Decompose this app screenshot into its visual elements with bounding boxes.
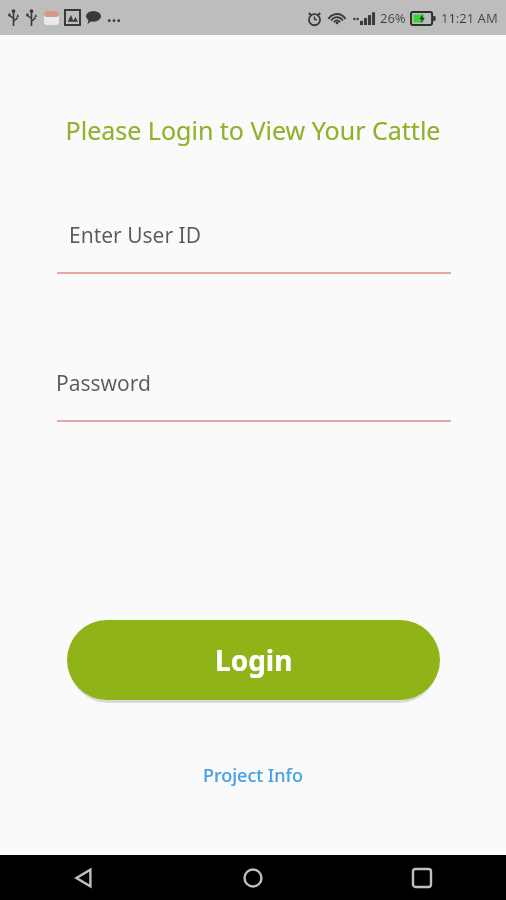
button[interactable]: Back: [0, 855, 168, 900]
staticText: Project Info: [203, 763, 303, 788]
button[interactable]: Enter User ID: [0, 216, 506, 281]
staticText: Password: [56, 369, 151, 398]
button[interactable]: Home: [168, 855, 337, 900]
staticText: 26%: [380, 9, 406, 27]
button[interactable]: Recent apps: [337, 855, 506, 900]
staticText: 11:21 AM: [441, 9, 498, 27]
button[interactable]: Project Info: [189, 757, 317, 794]
button[interactable]: Login: [67, 620, 440, 700]
button[interactable]: Password: [0, 364, 506, 429]
staticText: Login: [215, 641, 293, 679]
staticText: Enter User ID: [69, 221, 202, 250]
staticText: Please Login to View Your Cattle: [0, 113, 506, 147]
